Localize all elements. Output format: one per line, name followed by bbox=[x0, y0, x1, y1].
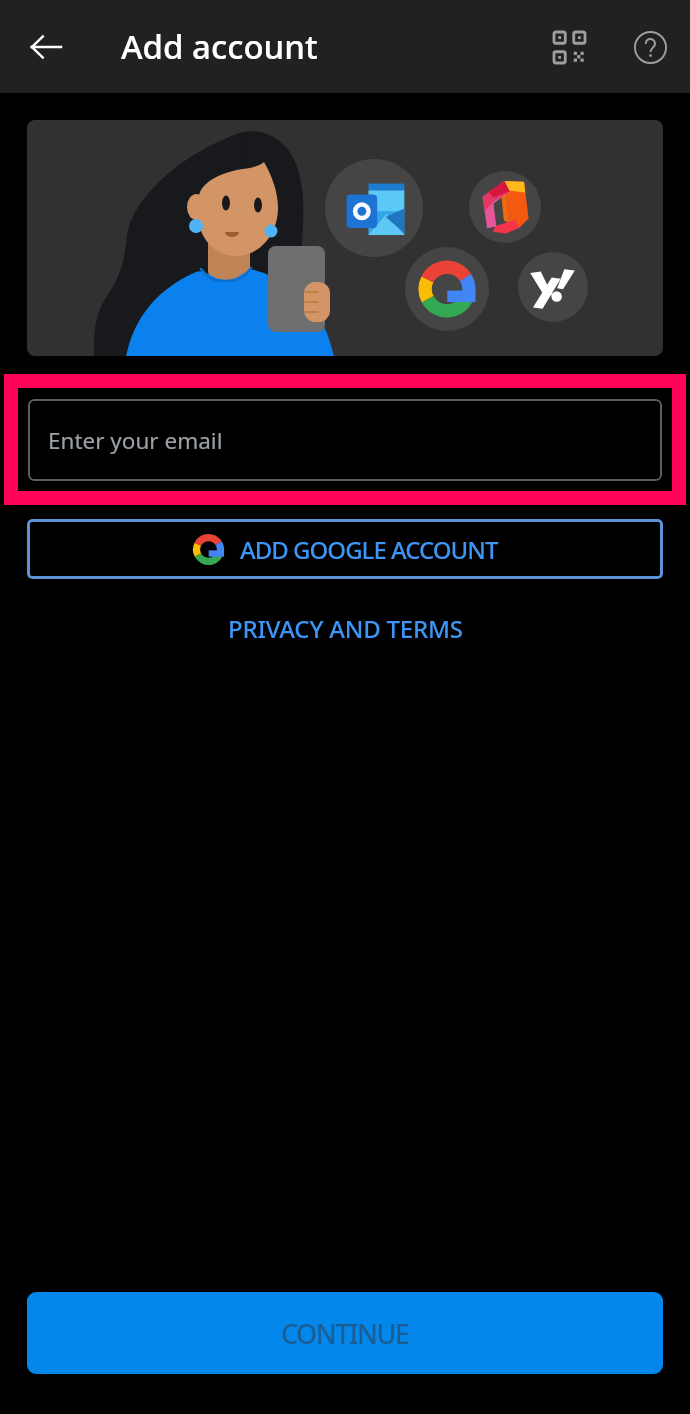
button[interactable]: Scan QR code bbox=[541, 19, 597, 75]
staticText: Enter your email bbox=[48, 425, 223, 456]
button[interactable]: Back bbox=[18, 19, 74, 75]
staticText: ADD GOOGLE ACCOUNT bbox=[240, 533, 498, 566]
button[interactable]: ADD GOOGLE ACCOUNT bbox=[27, 519, 663, 579]
button[interactable]: Help bbox=[622, 19, 678, 75]
button[interactable]: PRIVACY AND TERMS bbox=[212, 604, 479, 652]
staticText: CONTINUE bbox=[281, 1315, 409, 1352]
button[interactable]: CONTINUE bbox=[27, 1292, 663, 1374]
staticText: Add account bbox=[121, 24, 318, 69]
button[interactable]: Enter your email bbox=[28, 399, 662, 481]
staticText: PRIVACY AND TERMS bbox=[228, 612, 463, 644]
